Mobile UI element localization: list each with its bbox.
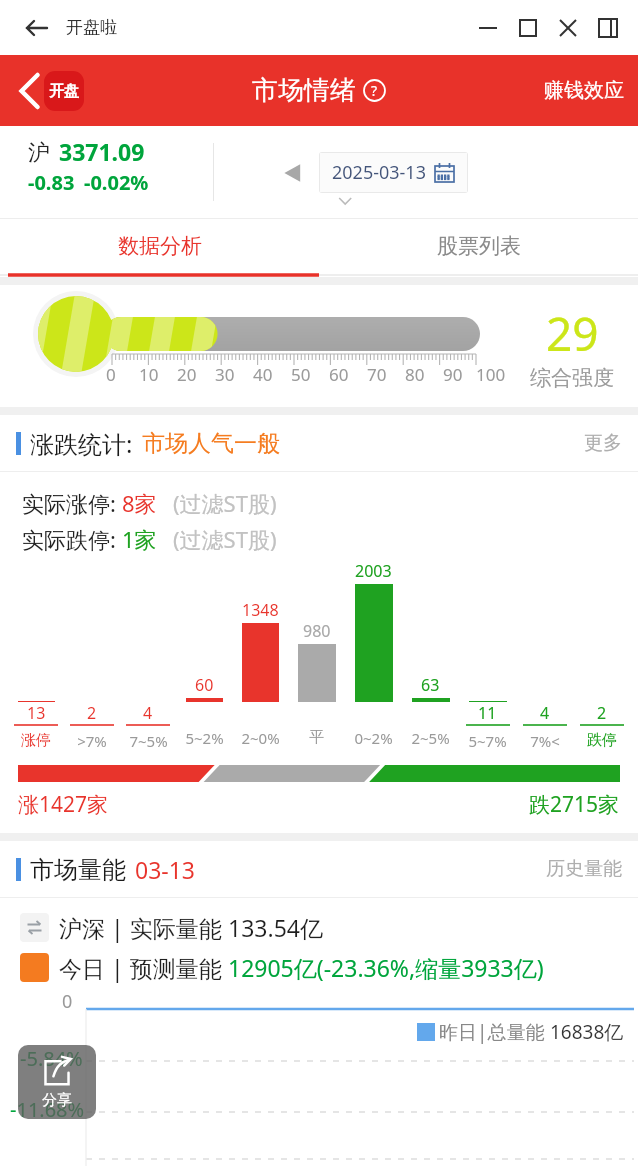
staticText: 7%< [530,731,560,751]
staticText: 2003 [355,560,392,582]
staticText: ? [371,81,378,100]
staticText: 90 [443,363,463,386]
staticText: 沪深 | 实际量能 [59,912,228,943]
staticText: 50 [291,363,311,386]
staticText: 2 [87,702,97,724]
staticText: 2 [597,702,607,724]
staticText: 20 [177,363,197,386]
staticText: 4 [540,702,550,724]
staticText: 市场量能 [30,855,126,885]
staticText: 63 [421,674,440,696]
staticText: 昨日|总量能 [439,1019,550,1045]
button[interactable]: 市场情绪 [252,74,386,107]
staticText: 今日 | 预测量能 [59,952,228,983]
staticText: (过滤ST股) [173,524,277,554]
staticText: 涨停 [21,731,51,750]
staticText: 40 [253,363,273,386]
staticText: 1家 [122,524,157,554]
staticText: 0~2% [354,728,393,748]
staticText: 03-13 [135,854,196,885]
staticText: 开盘 [49,82,79,101]
button[interactable]: 历史量能 [546,857,622,881]
staticText: 11 [478,702,497,724]
staticText: 980 [303,620,331,642]
staticText: 100 [476,363,506,386]
staticText: 70 [367,363,387,386]
staticText: 沪 [28,139,50,167]
button[interactable]: Maximize [508,8,548,48]
button[interactable]: 赚钱效应 [544,78,624,103]
staticText: -5.84% [20,1045,83,1072]
staticText: 5~7% [468,731,507,751]
staticText: 分享 [42,1091,72,1110]
button[interactable]: 2025-03-13 [319,152,468,193]
staticText: 开盘啦 [66,17,117,38]
staticText: 市场人气一般 [142,429,280,458]
staticText: 市场情绪 [252,74,356,107]
staticText: 4 [143,702,153,724]
button[interactable]: 沪 [28,136,638,208]
staticText: 跌2715家 [529,790,620,819]
staticText: 涨1427家 [18,790,109,819]
staticText: 平 [309,728,324,747]
button[interactable]: 数据分析 [0,219,319,273]
staticText: 综合强度 [530,365,614,391]
staticText: 3371.09 [59,136,145,167]
staticText: 30 [215,363,235,386]
button[interactable]: Back [16,7,58,49]
staticText: 12905亿(-23.36%,缩量3933亿) [228,952,544,983]
staticText: 股票列表 [437,233,521,259]
staticText: 2~5% [411,728,450,748]
staticText: >7% [77,731,107,751]
staticText: 10 [139,363,159,386]
staticText: 5~2% [185,728,224,748]
button[interactable]: Close [548,8,588,48]
button[interactable]: 今日 | 预测量能 [20,952,544,983]
staticText: -0.83 [28,169,75,196]
staticText: 赚钱效应 [544,78,624,103]
button[interactable]: Share [18,1045,96,1119]
button[interactable]: Back [12,71,84,111]
button[interactable]: Previous day [275,155,311,191]
staticText: 60 [329,363,349,386]
staticText: 2~0% [241,728,280,748]
staticText: 涨跌统计: [30,427,133,460]
staticText: 7~5% [129,731,168,751]
button[interactable]: Minimize [468,8,508,48]
button[interactable]: Split screen [588,8,628,48]
staticText: 133.54亿 [228,912,323,943]
button[interactable]: 沪深 | 实际量能 [20,912,323,943]
staticText: -11.68% [10,1096,85,1123]
staticText: 16838亿 [550,1019,624,1045]
staticText: 29 [546,302,599,365]
staticText: -0.02% [84,169,149,196]
staticText: 0 [62,989,73,1014]
staticText: 更多 [584,431,622,455]
button[interactable]: 更多 [584,431,622,455]
staticText: 1348 [242,599,279,621]
staticText: 13 [27,702,46,724]
button[interactable]: 股票列表 [319,219,638,273]
staticText: 0 [106,363,116,386]
staticText: 80 [405,363,425,386]
staticText: 实际涨停: [22,488,122,518]
staticText: (过滤ST股) [173,488,277,518]
staticText: 历史量能 [546,857,622,881]
staticText: 跌停 [587,731,617,750]
staticText: 数据分析 [118,233,202,259]
staticText: 2025-03-13 [332,160,426,185]
staticText: 实际跌停: [22,524,122,554]
staticText: 60 [195,674,214,696]
staticText: 8家 [122,488,157,518]
